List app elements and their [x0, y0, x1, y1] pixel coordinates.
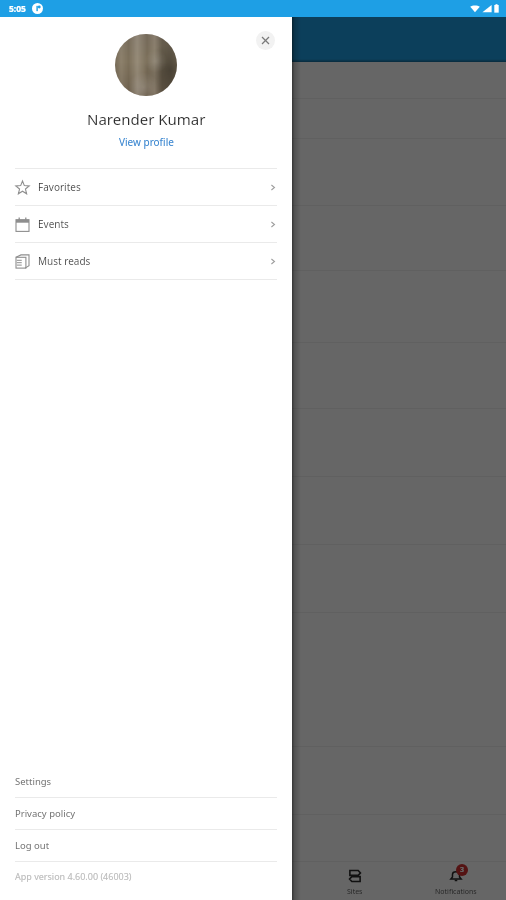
- button[interactable]: 3: [405, 861, 506, 900]
- button[interactable]: Log out: [0, 830, 292, 861]
- staticText: View profile: [119, 135, 174, 149]
- staticText: Sites: [347, 887, 363, 897]
- button[interactable]: View profile: [109, 130, 184, 154]
- staticText: Settings: [15, 775, 52, 788]
- button[interactable]: Close navigation drawer: [0, 0, 506, 900]
- button[interactable]: Library: [203, 861, 304, 900]
- staticText: Favorites: [38, 180, 81, 194]
- staticText: Events: [38, 217, 69, 231]
- staticText: Privacy policy: [15, 807, 76, 820]
- staticText: Must reads: [38, 254, 91, 268]
- button[interactable]: Settings: [0, 766, 292, 797]
- staticText: 5:05: [9, 3, 26, 15]
- button[interactable]: Must reads: [0, 243, 292, 279]
- button[interactable]: Privacy policy: [0, 798, 292, 829]
- button[interactable]: Home: [0, 861, 102, 900]
- staticText: Log out: [15, 839, 50, 852]
- staticText: App version 4.60.00 (46003): [15, 870, 132, 882]
- button[interactable]: Close drawer: [256, 31, 275, 50]
- button[interactable]: Events: [0, 206, 292, 242]
- button[interactable]: Sites: [304, 861, 405, 900]
- button[interactable]: Search: [102, 861, 203, 900]
- button[interactable]: Favorites: [0, 169, 292, 205]
- staticText: Notifications: [435, 887, 477, 897]
- staticText: Narender Kumar: [87, 109, 206, 129]
- staticText: 3: [460, 865, 465, 875]
